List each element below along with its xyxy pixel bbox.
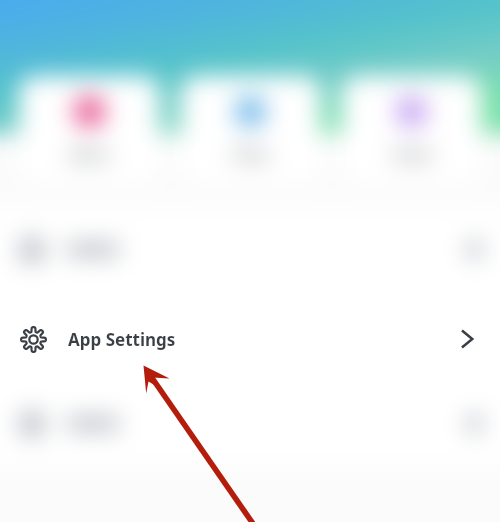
button[interactable]: Settings (19, 296, 479, 382)
button[interactable] (18, 206, 480, 293)
staticText: App Settings (68, 328, 176, 351)
button[interactable]: Cloud (342, 76, 481, 182)
button[interactable]: Alarm (19, 76, 159, 182)
button[interactable] (18, 380, 480, 467)
button[interactable] (18, 293, 480, 380)
button[interactable]: Timer (181, 76, 320, 182)
other: Settings (19, 325, 48, 354)
